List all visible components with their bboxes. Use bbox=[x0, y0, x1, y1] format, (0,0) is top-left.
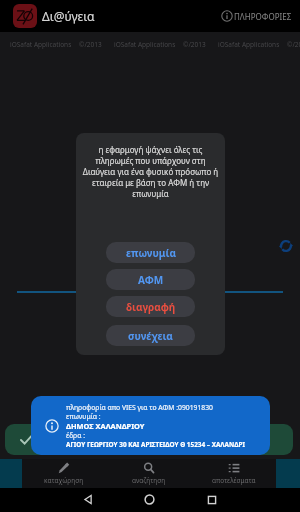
button[interactable]: πληροφορία απο VIES για το ΑΦΜ :09019183… bbox=[31, 396, 270, 455]
staticText: Δι@ύγεια bbox=[42, 8, 95, 24]
staticText: η εφαρμογή ψάχνει όλες τις πληρωμές που … bbox=[81, 144, 220, 199]
staticText: διαγραφή bbox=[126, 300, 176, 314]
button[interactable]: επωνυμία bbox=[106, 242, 195, 263]
staticText: iOSafat Applications bbox=[10, 40, 72, 49]
button[interactable]: Recents bbox=[207, 495, 217, 505]
staticText: ©/2013 bbox=[183, 40, 206, 49]
staticText: ΑΓΙΟΥ ΓΕΩΡΓΙΟΥ 30 ΚΑΙ ΑΡΙΣΤΕΙΔΟΥ Θ 15234… bbox=[66, 440, 245, 449]
staticText: ΑΦΜ bbox=[138, 273, 164, 287]
button[interactable]: ΑΦΜ bbox=[106, 269, 195, 290]
staticText: iOSafat Applications bbox=[218, 40, 280, 49]
button[interactable]: συνέχεια bbox=[106, 325, 195, 346]
staticText: iOSafat Applications bbox=[114, 40, 176, 49]
button[interactable]: Refresh bbox=[279, 239, 293, 253]
staticText: ΠΛΗΡΟΦΟΡΙΕΣ bbox=[234, 11, 292, 22]
staticText: ΔΗΜΟΣ ΧΑΛΑΝΔΡΙΟΥ bbox=[66, 421, 145, 431]
staticText: επωνυμία bbox=[126, 246, 176, 260]
button[interactable]: Home bbox=[144, 494, 155, 505]
staticText: συνέχεια bbox=[128, 329, 173, 343]
staticText: Η έδρα και η επωνυμία ειναι απο το VIES bbox=[39, 430, 172, 440]
button[interactable]: διαγραφή bbox=[106, 296, 195, 317]
staticText: έδρα : bbox=[66, 431, 86, 440]
staticText: αποτελέσματα bbox=[212, 476, 256, 485]
button[interactable]: αναζήτηση bbox=[106, 459, 191, 488]
button[interactable]: Logo bbox=[13, 4, 37, 28]
button[interactable]: Done bbox=[5, 424, 293, 455]
button[interactable]: καταχώρηση bbox=[22, 459, 106, 488]
staticText: καταχώρηση bbox=[44, 476, 84, 485]
staticText: το ΑΦΜ ειναι απο τη Διαύγεια bbox=[39, 440, 138, 450]
button[interactable]: αποτελέσματα bbox=[191, 459, 276, 488]
staticText: επωνυμία : bbox=[66, 412, 101, 421]
staticText: πληροφορία απο VIES για το ΑΦΜ :09019183… bbox=[66, 403, 213, 412]
button[interactable]: ΠΛΗΡΟΦΟΡΙΕΣ bbox=[211, 10, 300, 22]
staticText: ©/2013 bbox=[287, 40, 300, 49]
button[interactable]: Back bbox=[83, 494, 94, 505]
staticText: ©/2013 bbox=[79, 40, 102, 49]
staticText: αναζήτηση bbox=[132, 476, 166, 485]
